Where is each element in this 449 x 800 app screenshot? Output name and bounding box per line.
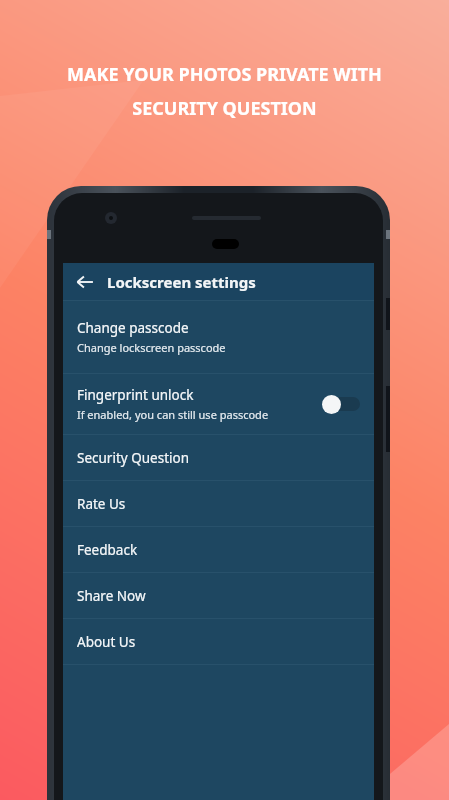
staticText: Change lockscreen passcode	[77, 340, 226, 355]
staticText: Feedback	[77, 541, 138, 559]
button[interactable]: Feedback	[63, 527, 374, 572]
button[interactable]: Security Question	[63, 435, 374, 480]
button[interactable]: Back	[63, 263, 107, 300]
staticText: Fingerprint unlock	[77, 386, 194, 404]
staticText: Lockscreen settings	[107, 272, 256, 292]
button[interactable]: Rate Us	[63, 481, 374, 526]
staticText: Share Now	[77, 587, 146, 605]
staticText: Change passcode	[77, 319, 189, 337]
button[interactable]: Share Now	[63, 573, 374, 618]
button[interactable]: Back	[63, 263, 374, 300]
staticText: About Us	[77, 633, 136, 651]
staticText: Rate Us	[77, 495, 126, 513]
button[interactable]: Fingerprint unlock	[63, 374, 374, 434]
button[interactable]: About Us	[63, 619, 374, 664]
staticText: SECURITY QUESTION	[132, 96, 317, 121]
staticText: If enabled, you can still use passcode	[77, 407, 269, 422]
staticText: MAKE YOUR PHOTOS PRIVATE WITH	[67, 62, 382, 87]
button[interactable]: Change passcode	[63, 301, 374, 373]
staticText: Security Question	[77, 449, 190, 467]
button[interactable]: Toggle fingerprint unlock	[322, 393, 360, 415]
